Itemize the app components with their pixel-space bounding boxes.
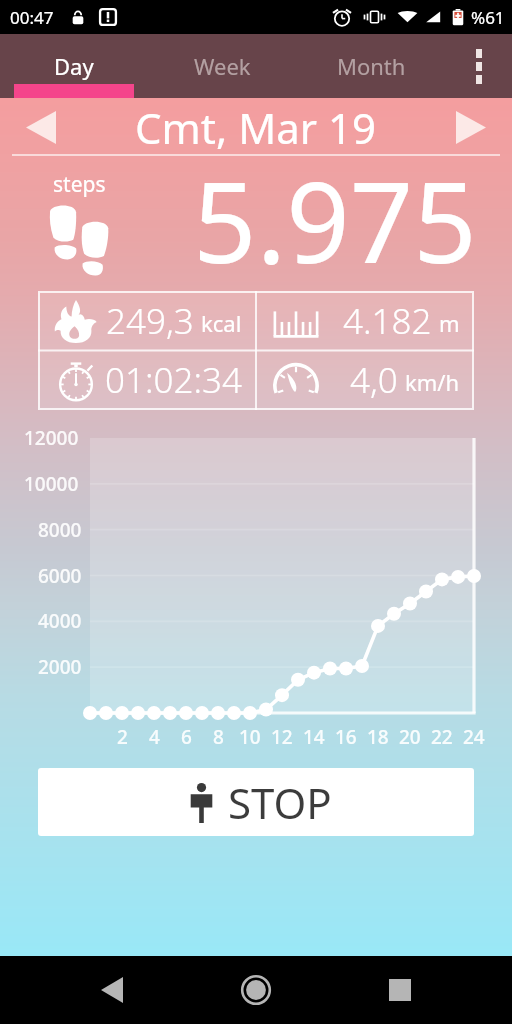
staticText: 12	[271, 724, 293, 750]
staticText: kcal	[201, 308, 242, 338]
staticText: 8000	[38, 517, 82, 543]
staticText: steps	[53, 170, 106, 199]
staticText: m	[439, 308, 460, 338]
staticText: 6	[181, 724, 192, 750]
staticText: 4	[149, 724, 160, 750]
staticText: 24	[463, 724, 485, 750]
staticText: 10	[239, 724, 261, 750]
staticText: 2	[117, 724, 128, 750]
staticText: Month	[337, 51, 406, 81]
button[interactable]: 4,0	[256, 350, 474, 410]
staticText: 20	[399, 724, 421, 750]
staticText: 6000	[38, 563, 82, 589]
staticText: 5.975	[193, 144, 477, 279]
staticText: 249,3	[106, 297, 194, 345]
staticText: 12000	[24, 425, 79, 451]
staticText: 8	[213, 724, 224, 750]
button[interactable]: STOP	[38, 768, 474, 836]
staticText: %61	[471, 6, 505, 29]
staticText: 2000	[38, 654, 82, 680]
staticText: km/h	[405, 367, 460, 397]
staticText: 01:02:34	[105, 356, 242, 404]
staticText: 4000	[38, 608, 82, 634]
staticText: STOP	[228, 774, 332, 831]
staticText: Week	[194, 51, 251, 81]
staticText: 4.182	[343, 297, 432, 345]
staticText: 14	[303, 724, 325, 750]
staticText: Day	[54, 51, 94, 81]
staticText: 00:47	[10, 6, 54, 29]
staticText: 22	[431, 724, 453, 750]
button[interactable]: Recent apps	[368, 958, 432, 1022]
staticText: Cmt, Mar 19	[135, 99, 377, 156]
button[interactable]: Previous day	[0, 98, 82, 156]
button[interactable]: More options	[446, 34, 512, 98]
button[interactable]: 4.182	[256, 291, 474, 350]
staticText: 10000	[24, 471, 79, 497]
button[interactable]: Home	[224, 958, 288, 1022]
button[interactable]: 01:02:34	[38, 350, 256, 410]
button[interactable]: Day	[0, 34, 148, 98]
button[interactable]: Next day	[430, 98, 512, 156]
staticText: 16	[335, 724, 357, 750]
button[interactable]: 249,3	[38, 291, 256, 350]
staticText: 18	[367, 724, 389, 750]
button[interactable]: Month	[296, 34, 446, 98]
button[interactable]: Back	[80, 958, 144, 1022]
staticText: 4,0	[350, 356, 398, 404]
button[interactable]: Week	[148, 34, 296, 98]
